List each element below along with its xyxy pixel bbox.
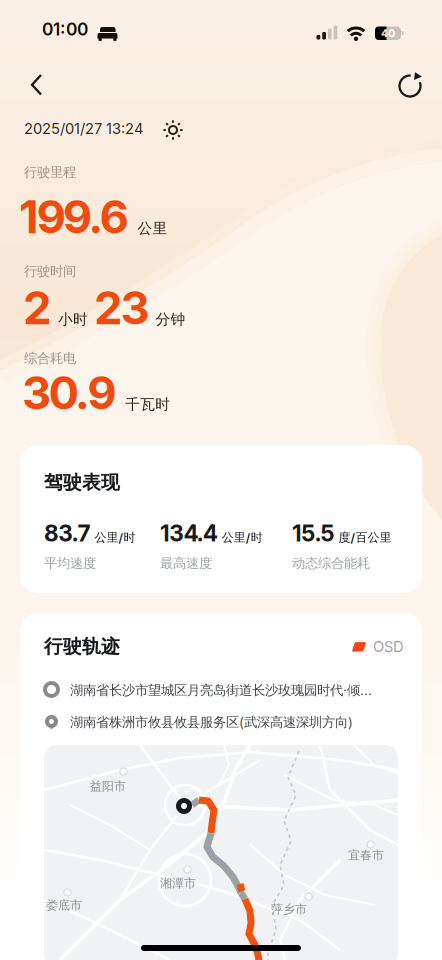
staticText: 199.6: [19, 190, 129, 243]
staticText: 湖南省长沙市望城区月亮岛街道长沙玫瑰园时代·倾...: [70, 682, 372, 698]
button[interactable]: OSD: [351, 638, 404, 655]
staticText: 驾驶表现: [44, 471, 120, 494]
staticText: 30.9: [22, 366, 116, 419]
staticText: 小时: [58, 310, 88, 328]
staticText: 湖南省株洲市攸县攸县服务区(武深高速深圳方向): [70, 714, 353, 730]
staticText: 度/百公里: [339, 530, 392, 545]
button[interactable]: Share: [388, 64, 432, 108]
staticText: 动态综合能耗: [292, 555, 370, 571]
staticText: 2: [23, 281, 52, 334]
staticText: OSD: [373, 638, 404, 655]
staticText: 公里/时: [95, 530, 136, 545]
staticText: 综合耗电: [24, 350, 76, 366]
staticText: 40: [381, 27, 395, 40]
staticText: 益阳市: [90, 779, 126, 794]
button[interactable]: Back: [10, 64, 54, 108]
staticText: 23: [94, 281, 149, 334]
staticText: 15.5: [292, 520, 335, 547]
staticText: 公里: [138, 219, 168, 237]
staticText: 83.7: [44, 520, 91, 547]
staticText: 01:00: [42, 19, 88, 39]
staticText: 千瓦时: [125, 395, 170, 413]
staticText: 分钟: [155, 310, 185, 328]
staticText: 萍乡市: [271, 902, 307, 917]
staticText: 公里/时: [222, 530, 263, 545]
staticText: 2025/01/27 13:24: [24, 120, 143, 137]
staticText: 行驶里程: [24, 164, 76, 180]
staticText: 宜春市: [348, 848, 384, 863]
staticText: 平均速度: [44, 555, 96, 571]
staticText: 最高速度: [160, 555, 212, 571]
staticText: 行驶时间: [24, 263, 76, 279]
staticText: 湘潭市: [160, 876, 196, 891]
staticText: 134.4: [160, 520, 218, 547]
staticText: 娄底市: [46, 898, 82, 913]
staticText: 行驶轨迹: [44, 635, 120, 658]
